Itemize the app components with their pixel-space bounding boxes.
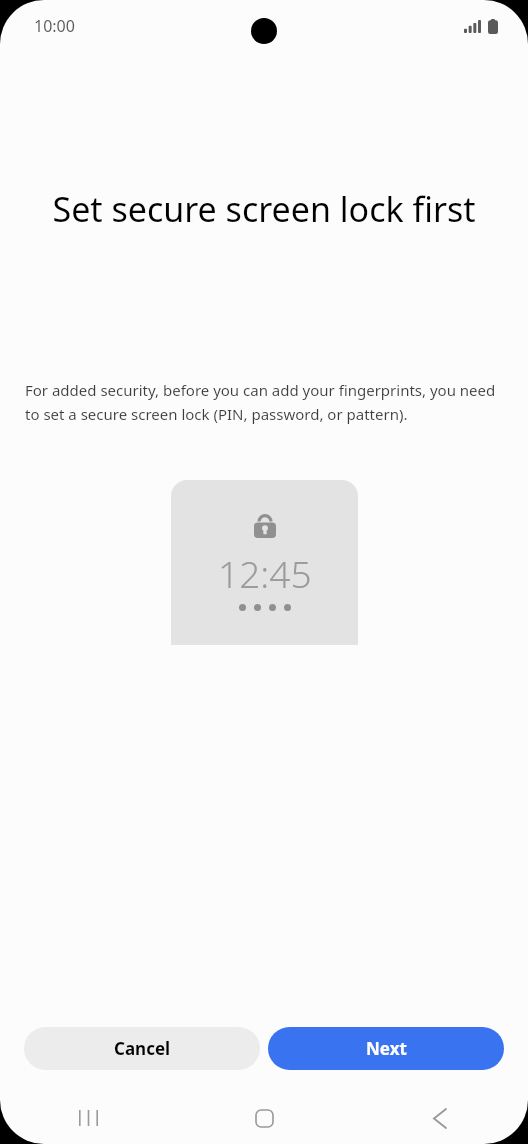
- staticText: 12:45: [218, 548, 312, 598]
- button[interactable]: Next: [268, 1027, 504, 1070]
- staticText: Set secure screen lock first: [38, 186, 490, 232]
- button[interactable]: Back: [352, 1096, 528, 1140]
- staticText: 10:00: [34, 15, 75, 37]
- button[interactable]: Home: [176, 1096, 352, 1140]
- staticText: Cancel: [114, 1037, 171, 1060]
- button[interactable]: Cancel: [24, 1027, 260, 1070]
- staticText: Next: [366, 1037, 407, 1060]
- staticText: For added security, before you can add y…: [25, 380, 503, 424]
- button[interactable]: Recents: [0, 1096, 176, 1140]
